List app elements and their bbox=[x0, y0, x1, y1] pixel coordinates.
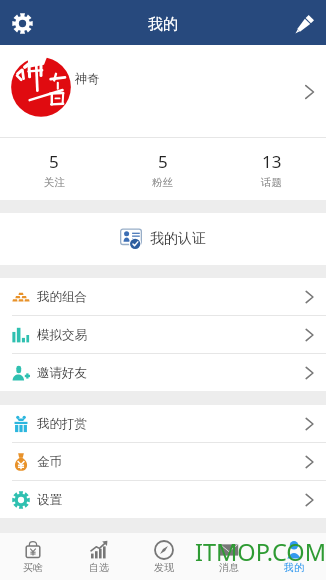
button[interactable]: 5 bbox=[0, 138, 108, 200]
staticText: 我的认证 bbox=[150, 230, 206, 248]
button[interactable]: Edit bbox=[288, 8, 321, 41]
button[interactable]: 买啥 bbox=[0, 533, 66, 580]
staticText: 模拟交易 bbox=[37, 327, 87, 343]
button[interactable]: 我的 bbox=[261, 533, 326, 580]
button[interactable]: 我的组合 bbox=[0, 278, 326, 315]
button[interactable]: 发现 bbox=[131, 533, 196, 580]
button[interactable]: 金币 bbox=[0, 443, 326, 480]
staticText: 话题 bbox=[261, 176, 282, 189]
staticText: 设置 bbox=[37, 492, 62, 508]
staticText: 5 bbox=[158, 150, 168, 173]
staticText: 我的组合 bbox=[37, 289, 87, 305]
staticText: 买啥 bbox=[23, 561, 43, 574]
staticText: ITMOP.COM bbox=[195, 536, 326, 568]
button[interactable]: 自选 bbox=[66, 533, 131, 580]
staticText: 自选 bbox=[89, 561, 109, 574]
button[interactable]: 我的认证 bbox=[0, 213, 326, 265]
button[interactable]: 5 bbox=[108, 138, 217, 200]
button[interactable]: 神奇 bbox=[0, 45, 326, 137]
button[interactable]: 我的打赏 bbox=[0, 405, 326, 442]
button[interactable]: Settings bbox=[6, 7, 39, 40]
button[interactable]: 邀请好友 bbox=[0, 354, 326, 391]
staticText: 发现 bbox=[154, 561, 174, 574]
button[interactable]: 13 bbox=[217, 138, 326, 200]
staticText: 金币 bbox=[37, 454, 62, 470]
staticText: 5 bbox=[49, 150, 59, 173]
staticText: 我的 bbox=[284, 561, 304, 574]
button[interactable]: 设置 bbox=[0, 481, 326, 518]
button[interactable]: 消息 bbox=[196, 533, 261, 580]
staticText: 神奇 bbox=[75, 71, 100, 87]
button[interactable]: 模拟交易 bbox=[0, 316, 326, 353]
staticText: 粉丝 bbox=[152, 176, 173, 189]
staticText: 我的 bbox=[148, 15, 178, 34]
staticText: 关注 bbox=[44, 176, 65, 189]
staticText: 邀请好友 bbox=[37, 365, 87, 381]
staticText: 13 bbox=[262, 150, 282, 173]
staticText: 消息 bbox=[219, 561, 239, 574]
staticText: 我的打赏 bbox=[37, 416, 87, 432]
